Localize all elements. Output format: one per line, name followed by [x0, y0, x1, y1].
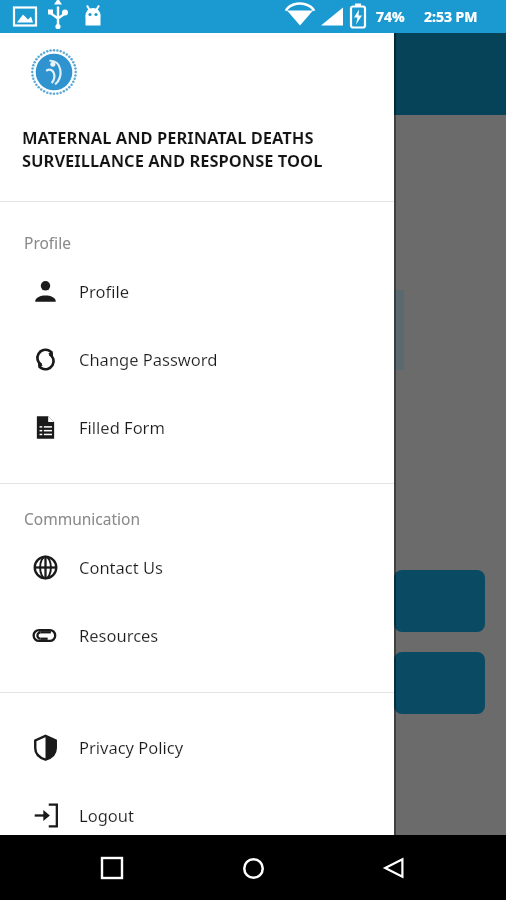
button[interactable]: [394, 652, 485, 714]
button[interactable]: Resources: [0, 601, 394, 669]
staticText: Profile: [79, 280, 129, 302]
button[interactable]: Logout: [0, 781, 394, 849]
button[interactable]: Privacy Policy: [0, 713, 394, 781]
staticText: Filled Form: [79, 416, 165, 438]
staticText: MATERNAL AND PERINATAL DEATHS SURVEILLAN…: [22, 126, 323, 172]
staticText: Change Password: [79, 348, 218, 370]
staticText: Communication: [24, 508, 141, 529]
button[interactable]: Change Password: [0, 325, 394, 393]
staticText: Contact Us: [79, 556, 163, 578]
button[interactable]: Profile: [0, 257, 394, 325]
staticText: Resources: [79, 624, 159, 646]
staticText: 74%: [376, 7, 405, 26]
button[interactable]: Back: [370, 844, 418, 892]
button[interactable]: Filled Form: [0, 393, 394, 461]
button[interactable]: Contact Us: [0, 533, 394, 601]
staticText: Logout: [79, 804, 134, 826]
button[interactable]: Recent apps: [88, 844, 136, 892]
staticText: Privacy Policy: [79, 736, 184, 758]
button[interactable]: Home: [229, 844, 277, 892]
staticText: Profile: [24, 232, 71, 253]
button[interactable]: [394, 570, 485, 632]
staticText: 2:53 PM: [424, 7, 478, 26]
